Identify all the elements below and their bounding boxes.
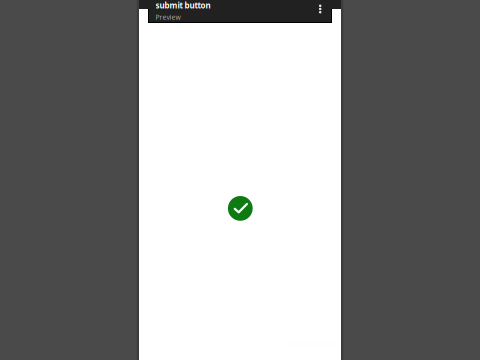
- button[interactable]: More options: [313, 2, 327, 16]
- staticText: submit button: [155, 0, 210, 11]
- button[interactable]: Submit: [228, 196, 253, 221]
- staticText: Preview: [156, 13, 181, 22]
